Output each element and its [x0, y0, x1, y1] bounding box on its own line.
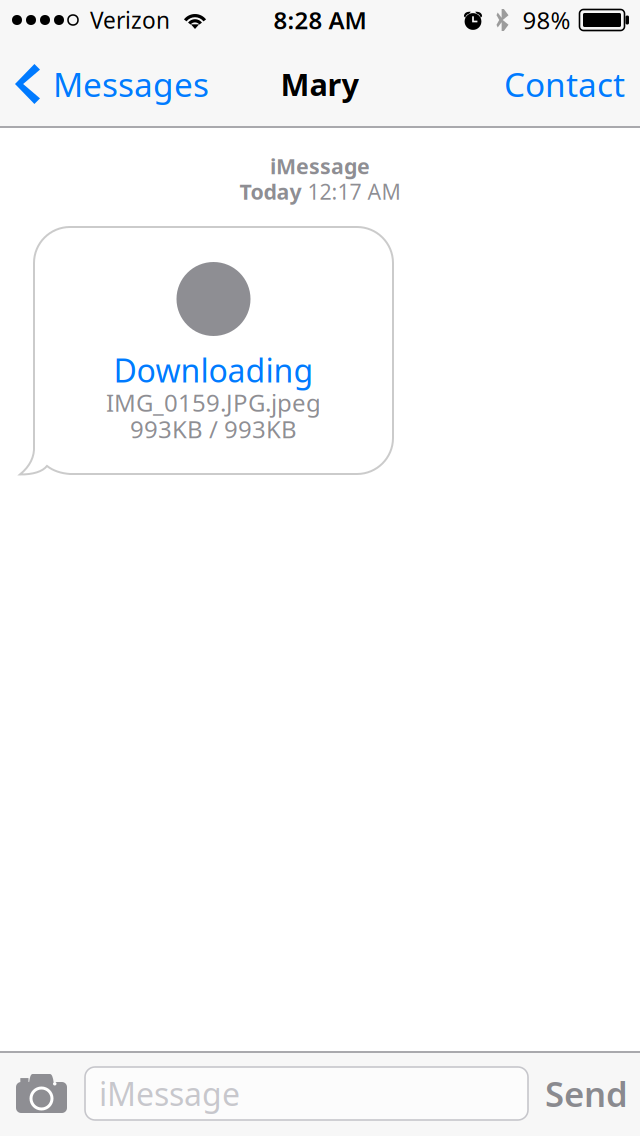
staticText: iMessage — [270, 152, 370, 180]
button[interactable]: Take photo — [0, 1051, 85, 1136]
staticText: iMessage — [99, 1072, 240, 1115]
staticText: Today — [239, 177, 301, 206]
staticText: Downloading — [113, 349, 313, 391]
staticText: Mary — [280, 64, 359, 104]
staticText: IMG_0159.JPG.jpeg — [106, 387, 321, 418]
staticText: Messages — [53, 62, 209, 106]
button[interactable]: Contact — [484, 40, 640, 128]
staticText: 98% — [522, 4, 570, 36]
staticText: 993KB / 993KB — [130, 413, 297, 445]
button[interactable]: Messages — [0, 40, 223, 128]
button[interactable]: Send — [528, 1051, 640, 1136]
staticText: Verizon — [90, 5, 170, 35]
staticText: Send — [545, 1070, 628, 1116]
staticText: 12:17 AM — [301, 177, 400, 206]
staticText: 8:28 AM — [273, 4, 366, 36]
staticText: Contact — [504, 62, 625, 106]
